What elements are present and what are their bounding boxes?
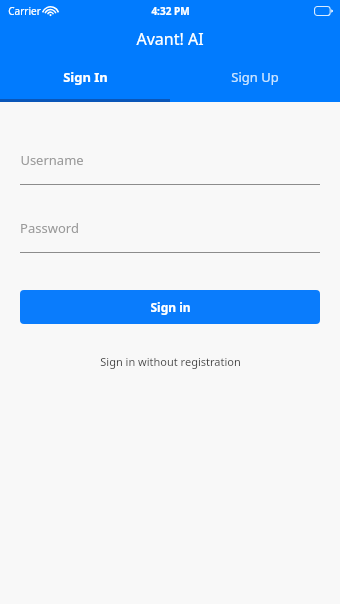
staticText: Sign Up <box>231 68 279 86</box>
staticText: Sign In <box>63 68 108 86</box>
button[interactable]: Sign In <box>0 62 170 92</box>
staticText: 4:32 PM <box>151 4 190 18</box>
staticText: Sign in without registration <box>100 354 241 369</box>
button[interactable]: Username <box>20 149 320 185</box>
staticText: Password <box>20 219 79 237</box>
button[interactable]: Sign in <box>20 290 320 324</box>
button[interactable]: Sign Up <box>170 62 340 92</box>
staticText: Avant! AI <box>136 28 204 50</box>
staticText: Sign in <box>150 299 191 315</box>
button[interactable]: Sign in without registration <box>20 351 320 371</box>
staticText: Carrier <box>8 4 41 18</box>
staticText: Username <box>20 151 84 169</box>
button[interactable]: Password <box>20 217 320 253</box>
